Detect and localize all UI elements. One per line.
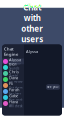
button[interactable]: Eli	[2, 82, 24, 88]
button[interactable]: Gabe	[2, 94, 24, 100]
staticText: Got them	[9, 86, 22, 90]
staticText: Ben	[9, 61, 16, 67]
staticText: Alyssa	[9, 57, 21, 62]
button[interactable]: Ben	[2, 64, 24, 70]
staticText: Gabe	[9, 93, 18, 98]
button[interactable]: Hana	[2, 100, 24, 106]
button[interactable]: Alyssa	[2, 58, 24, 64]
staticText: Chat with other users	[21, 2, 43, 44]
staticText: Alyssa	[26, 49, 38, 54]
staticText: On my way	[9, 80, 22, 84]
button[interactable]: Dana	[2, 76, 24, 82]
staticText: Sync later	[9, 92, 21, 96]
staticText: See you!	[47, 85, 59, 89]
staticText: Thanks!	[9, 74, 18, 78]
staticText: Sounds good	[9, 67, 19, 74]
staticText: Farah	[9, 87, 19, 92]
staticText: See you!	[9, 62, 21, 66]
staticText: Chat Engine	[4, 46, 18, 57]
staticText: Eli	[9, 81, 13, 86]
staticText: Will check	[9, 104, 22, 108]
staticText: Hana	[9, 99, 18, 104]
button[interactable]: Chris	[2, 70, 24, 76]
button[interactable]: Farah	[2, 88, 24, 94]
staticText: Chris	[9, 69, 19, 74]
staticText: Nice work	[9, 98, 22, 102]
staticText: Dana	[9, 75, 18, 80]
